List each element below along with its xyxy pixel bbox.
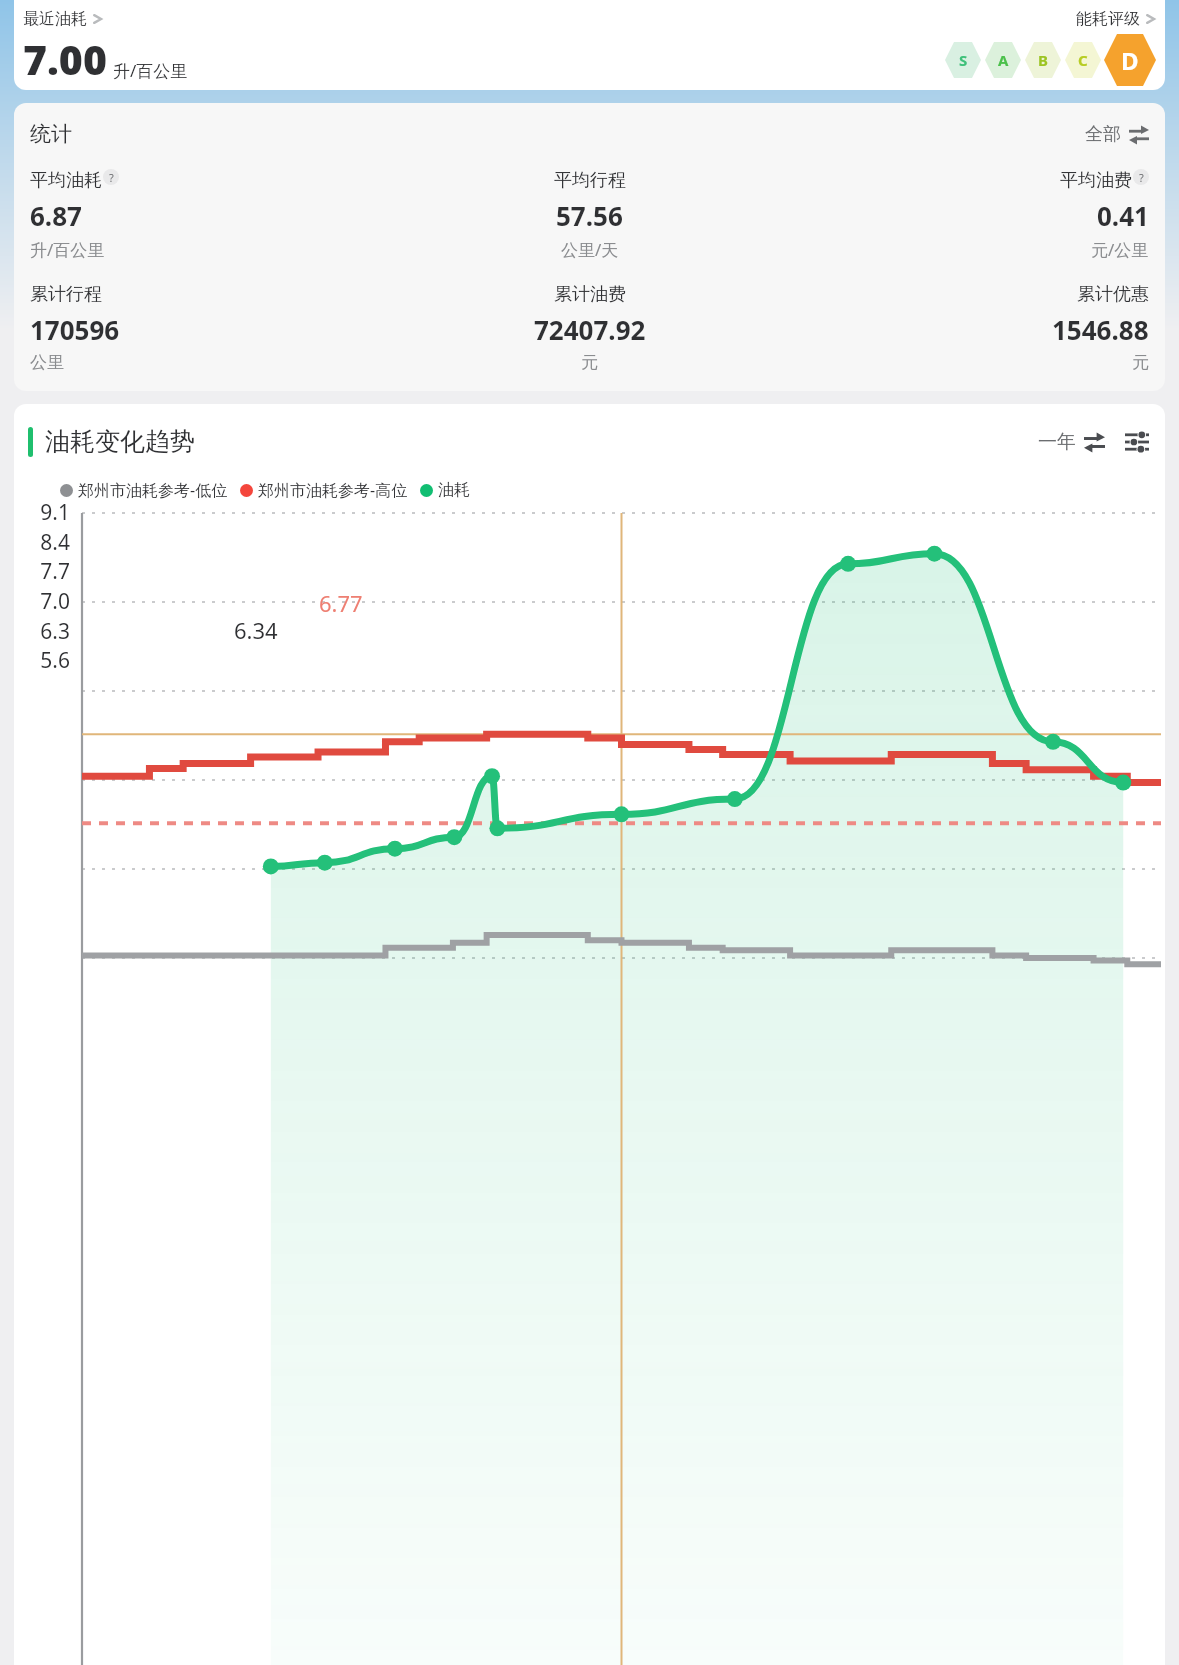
staticText: 一年 (1038, 430, 1076, 454)
staticText: A (998, 50, 1009, 70)
button[interactable]: 累计优惠 (776, 283, 1149, 373)
other: 切换时间范围 (1084, 432, 1105, 453)
staticText: 7.7 (14, 557, 70, 586)
button[interactable]: 一年 (1038, 430, 1105, 454)
staticText: 平均油耗 (30, 169, 102, 192)
staticText: 5.6 (14, 646, 70, 675)
staticText: 平均油费 (1060, 169, 1132, 192)
staticText: 7.00 (23, 31, 107, 87)
staticText: 元/公里 (1091, 238, 1149, 261)
staticText: 9.1 (14, 498, 70, 527)
button[interactable]: 郑州市油耗参考-高位 (240, 479, 408, 501)
staticText: 0.41 (1097, 198, 1149, 233)
staticText: 公里 (30, 352, 64, 373)
staticText: 累计优惠 (1077, 283, 1149, 306)
staticText: 升/百公里 (113, 59, 188, 82)
staticText: 累计油费 (554, 283, 626, 306)
staticText: 郑州市油耗参考-低位 (78, 479, 228, 501)
staticText: ? (109, 170, 114, 185)
button[interactable]: 图表设置 (1125, 430, 1149, 454)
staticText: 油耗变化趋势 (45, 426, 195, 457)
staticText: 6.77 (319, 588, 363, 618)
staticText: 郑州市油耗参考-高位 (258, 479, 408, 501)
staticText: 7.0 (14, 587, 70, 616)
staticText: 平均行程 (554, 169, 626, 192)
staticText: 油耗 (438, 480, 470, 500)
staticText: 元 (581, 352, 598, 373)
staticText: S (959, 50, 968, 70)
staticText: C (1078, 50, 1088, 70)
staticText: 6.87 (30, 198, 82, 233)
button[interactable]: 全部 (1085, 123, 1149, 146)
button[interactable]: 平均油费 (776, 169, 1149, 261)
staticText: 统计 (30, 121, 72, 147)
button[interactable]: 最近油耗 (23, 9, 103, 29)
staticText: 6.3 (14, 617, 70, 646)
button[interactable]: 郑州市油耗参考-低位 (60, 479, 228, 501)
staticText: 1546.88 (1052, 312, 1149, 347)
staticText: B (1038, 50, 1048, 70)
button[interactable]: 能耗评级 (1076, 9, 1156, 29)
staticText: 能耗评级 (1076, 9, 1140, 29)
button[interactable]: 平均油耗 (30, 169, 403, 261)
staticText: 6.34 (234, 615, 278, 645)
staticText: 公里/天 (561, 238, 619, 261)
staticText: 最近油耗 (23, 9, 87, 29)
staticText: 元 (1132, 352, 1149, 373)
staticText: 全部 (1085, 123, 1121, 146)
staticText: 8.4 (14, 528, 70, 557)
staticText: 累计行程 (30, 283, 102, 306)
button[interactable]: 累计行程 (30, 283, 403, 373)
button[interactable]: 油耗 (420, 480, 470, 500)
staticText: ? (1139, 170, 1144, 185)
other: 切换 (1129, 125, 1149, 145)
button[interactable]: 累计油费 (403, 283, 776, 373)
staticText: 72407.92 (534, 312, 646, 347)
staticText: 57.56 (556, 198, 623, 233)
staticText: 升/百公里 (30, 238, 105, 261)
staticText: D (1121, 44, 1139, 77)
staticText: 170596 (30, 312, 120, 347)
button[interactable]: 平均行程 (403, 169, 776, 261)
